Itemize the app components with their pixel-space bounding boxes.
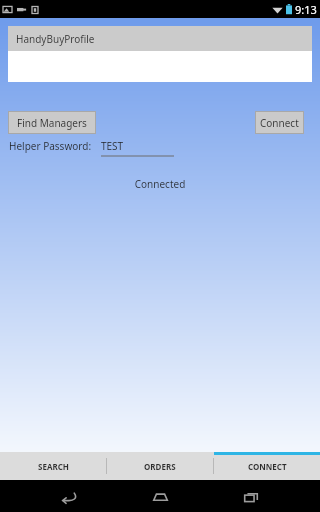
staticText: 9:13 (295, 2, 317, 17)
staticText: TEST (101, 139, 124, 153)
staticText: CONNECT (248, 461, 287, 472)
staticText: SEARCH (38, 461, 69, 472)
staticText: ORDERS (144, 461, 176, 472)
button[interactable]: Find Managers (8, 111, 96, 134)
staticText: Connected (0, 177, 320, 191)
button[interactable]: HandyBuyProfile (8, 26, 312, 51)
button[interactable]: Back (47, 480, 91, 512)
button[interactable]: TEST (101, 139, 174, 157)
staticText: Helper Password: (9, 139, 92, 153)
button[interactable]: SEARCH (0, 452, 106, 480)
button[interactable]: Home (138, 480, 182, 512)
staticText: Connect (260, 116, 299, 130)
button[interactable]: CONNECT (214, 452, 320, 480)
button[interactable]: Connect (255, 111, 304, 134)
staticText: Find Managers (17, 116, 87, 130)
button[interactable]: ORDERS (107, 452, 213, 480)
button[interactable]: Recent apps (229, 480, 273, 512)
staticText: HandyBuyProfile (16, 32, 95, 46)
